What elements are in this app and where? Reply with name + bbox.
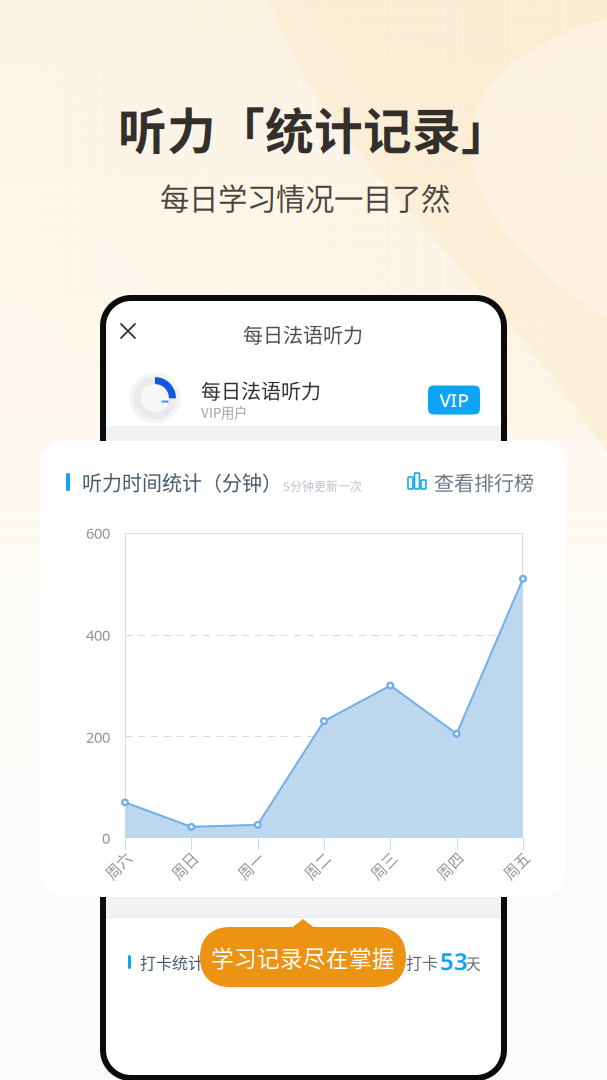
staticText: 周三 (368, 854, 398, 876)
staticText: 听力「统计记录」 (118, 93, 510, 163)
staticText: 400 (86, 625, 110, 645)
button[interactable]: 查看排行榜 (408, 467, 534, 496)
staticText: 听力时间统计（分钟） (82, 467, 282, 496)
staticText: 周二 (302, 854, 332, 876)
staticText: 每日法语听力 (201, 375, 321, 404)
staticText: 5分钟更新一次 (283, 477, 362, 495)
button[interactable]: 关闭 (108, 311, 147, 350)
staticText: 每日法语听力 (243, 319, 363, 348)
staticText: 天 (466, 952, 481, 974)
staticText: 每日学习情况一目了然 (160, 176, 450, 218)
staticText: 53 (440, 945, 468, 977)
staticText: VIP (439, 388, 468, 412)
button[interactable]: VIP (428, 385, 480, 414)
staticText: 600 (86, 523, 110, 543)
staticText: 周日 (169, 854, 199, 876)
staticText: 打卡统计 (140, 950, 204, 974)
staticText: 周六 (103, 854, 133, 876)
staticText: 学习记录尽在掌握 (211, 941, 395, 973)
staticText: 周四 (435, 854, 465, 876)
staticText: 打卡 (406, 950, 438, 974)
staticText: 周五 (501, 854, 531, 876)
staticText: 200 (86, 727, 110, 747)
staticText: 周一 (236, 854, 266, 876)
staticText: 查看排行榜 (434, 467, 534, 496)
staticText: VIP用户 (201, 402, 247, 422)
staticText: 0 (102, 828, 110, 848)
